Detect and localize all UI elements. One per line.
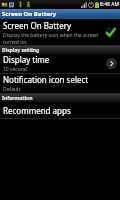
staticText: Screen On Battery (2, 10, 57, 18)
button[interactable]: Display time (0, 54, 120, 73)
staticText: Notification icon select (3, 74, 89, 85)
staticText: Information (2, 95, 33, 102)
button[interactable]: Enable Screen On Battery (104, 26, 117, 39)
staticText: Display time (3, 54, 50, 65)
staticText: 8:48 AM (100, 1, 119, 8)
button[interactable]: Open Display time (106, 58, 117, 69)
staticText: Default (3, 86, 21, 93)
button[interactable]: Notification icon select (0, 74, 120, 93)
staticText: Screen On Battery (3, 20, 72, 31)
button[interactable]: Recommend apps (0, 103, 120, 118)
button[interactable]: Screen On Battery (0, 20, 120, 45)
staticText: Display setting (2, 47, 40, 54)
staticText: Display the battery icon when the screen… (3, 32, 102, 45)
staticText: 10 second (3, 66, 27, 73)
staticText: Recommend apps (3, 105, 71, 116)
